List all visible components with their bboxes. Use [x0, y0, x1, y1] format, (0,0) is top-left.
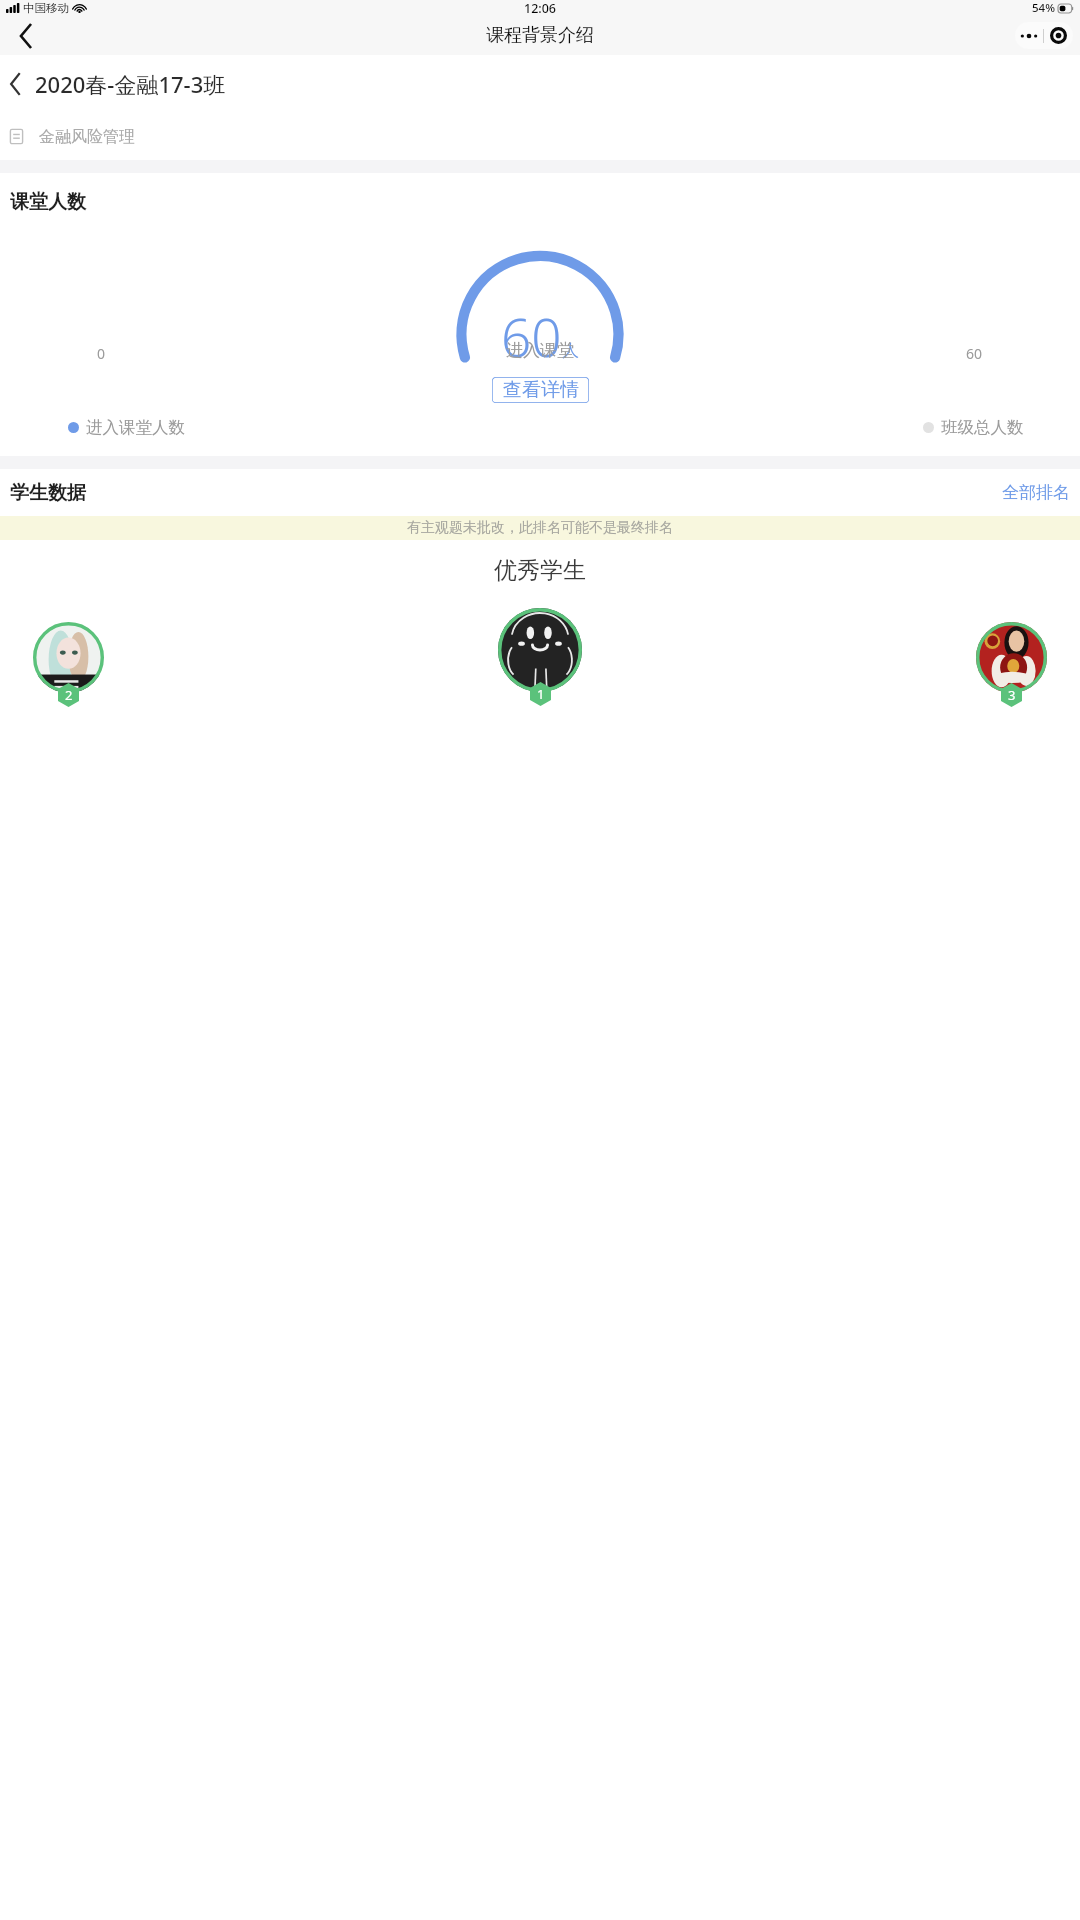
- staticText: 学生数据: [10, 481, 86, 505]
- staticText: 12:06: [524, 0, 557, 16]
- staticText: 课程背景介绍: [486, 24, 594, 47]
- staticText: 60: [966, 344, 983, 363]
- staticText: 54%: [1032, 0, 1055, 16]
- staticText: 1: [537, 685, 545, 703]
- button[interactable]: Close: [1044, 22, 1073, 49]
- staticText: 2020春-金融17-3班: [35, 69, 226, 99]
- staticText: 3: [1008, 686, 1016, 704]
- staticText: 有主观题未批改，此排名可能不是最终排名: [407, 519, 673, 537]
- button[interactable]: Rank 2 student: [33, 622, 104, 707]
- staticText: 60: [501, 300, 562, 365]
- staticText: 进入课堂: [506, 340, 574, 361]
- button[interactable]: 2020春-金融17-3班: [0, 55, 1080, 113]
- staticText: 课堂人数: [10, 190, 86, 214]
- staticText: 2: [65, 686, 73, 704]
- staticText: 金融风险管理: [39, 127, 135, 147]
- button[interactable]: Back: [4, 16, 48, 55]
- button[interactable]: Rank 3 student: [976, 622, 1047, 707]
- staticText: 全部排名: [1002, 482, 1070, 503]
- staticText: 进入课堂人数: [86, 417, 185, 438]
- staticText: 班级总人数: [941, 417, 1024, 438]
- button[interactable]: Rank 1 student: [498, 608, 582, 706]
- staticText: 0: [97, 344, 106, 363]
- staticText: 中国移动: [23, 1, 69, 15]
- button[interactable]: 全部排名: [992, 476, 1080, 509]
- staticText: 人: [562, 340, 579, 361]
- staticText: 查看详情: [503, 378, 579, 402]
- staticText: 优秀学生: [0, 556, 1080, 585]
- button[interactable]: More: [1015, 22, 1043, 49]
- button[interactable]: 查看详情: [492, 377, 589, 403]
